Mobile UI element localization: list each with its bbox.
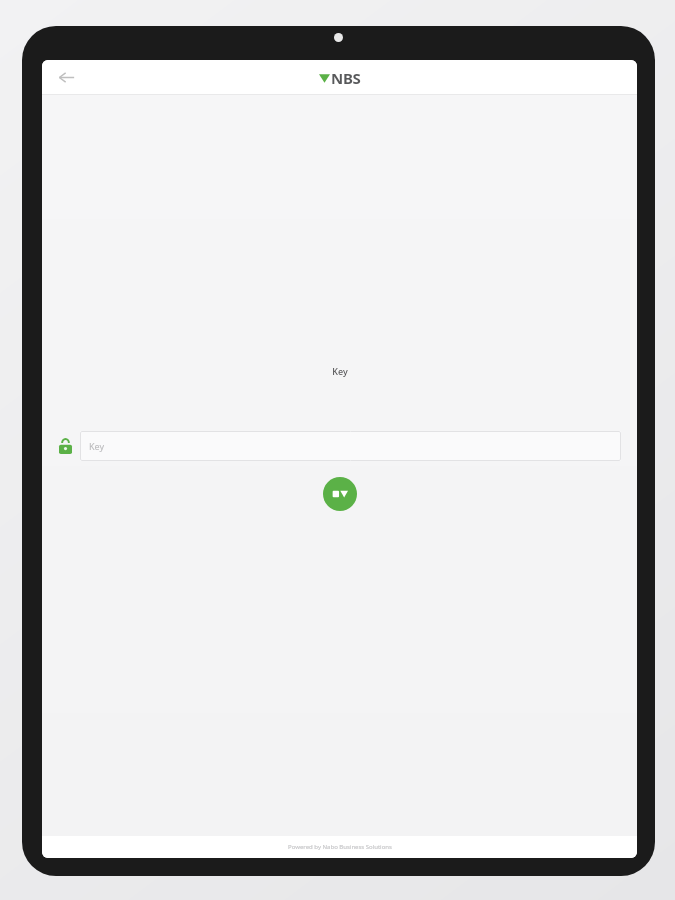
button[interactable]: Submit key <box>323 477 357 511</box>
staticText: Powered by Nabo Business Solutions <box>288 843 392 851</box>
button[interactable]: Back <box>48 60 84 95</box>
button[interactable]: Key <box>80 431 621 461</box>
staticText: Key <box>89 440 105 452</box>
staticText: Key <box>332 365 348 377</box>
staticText: NBS <box>331 68 361 88</box>
